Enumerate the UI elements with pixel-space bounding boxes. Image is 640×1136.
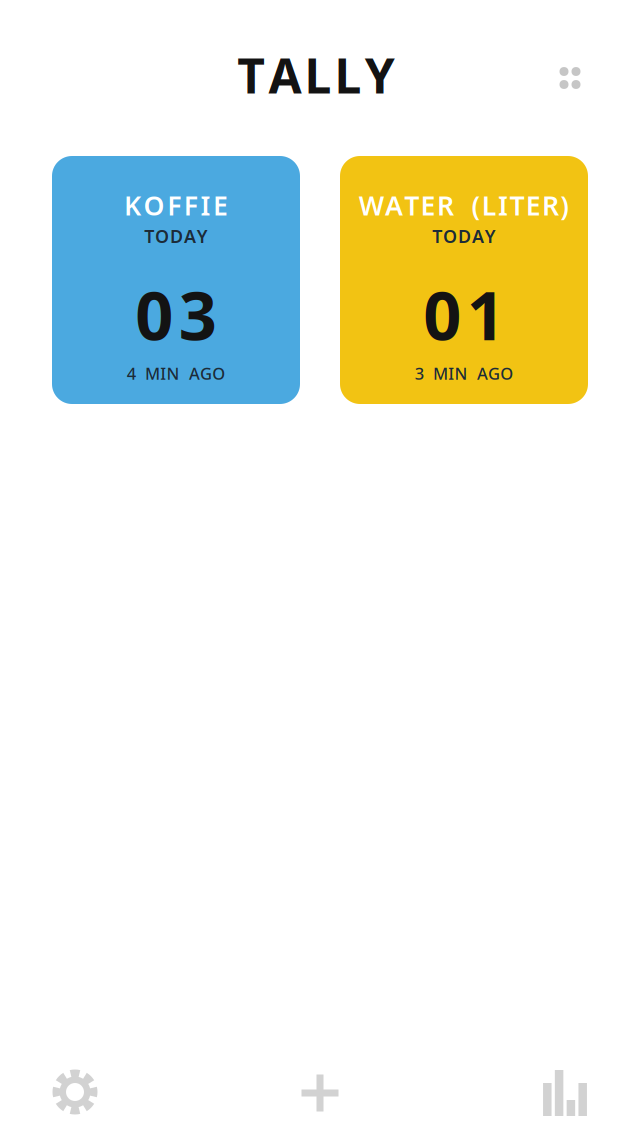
staticText: T — [432, 224, 442, 248]
staticText: O — [443, 224, 457, 248]
staticText: 0 — [423, 269, 461, 360]
staticText: L — [482, 187, 497, 223]
staticText: L — [335, 42, 362, 108]
staticText: A — [385, 187, 403, 223]
staticText: M — [433, 362, 448, 384]
button[interactable]: Statistics — [490, 1045, 640, 1135]
staticText: F — [184, 187, 198, 223]
staticText: A — [184, 224, 196, 248]
staticText: L — [304, 42, 331, 108]
staticText: A — [189, 362, 200, 384]
staticText: E — [421, 187, 436, 223]
button[interactable]: Add counter — [245, 1045, 395, 1135]
staticText: I — [448, 362, 454, 384]
staticText: G — [200, 362, 212, 384]
staticText: E — [526, 187, 541, 223]
staticText: R — [437, 187, 454, 223]
staticText: N — [454, 362, 467, 384]
button[interactable]: Switch layout — [540, 48, 600, 108]
staticText: D — [458, 224, 471, 248]
staticText: A — [268, 42, 301, 108]
staticText: R — [542, 187, 559, 223]
staticText: T — [237, 42, 265, 108]
button[interactable]: W — [340, 156, 588, 404]
staticText: I — [498, 187, 508, 223]
staticText: ) — [560, 187, 569, 223]
staticText: K — [124, 187, 141, 223]
staticText: 3 — [179, 269, 217, 360]
staticText: A — [477, 362, 488, 384]
staticText: T — [144, 224, 154, 248]
staticText: 1 — [467, 269, 505, 360]
staticText: Y — [365, 42, 395, 108]
staticText: Y — [485, 224, 496, 248]
staticText: I — [200, 187, 210, 223]
staticText: M — [145, 362, 160, 384]
staticText: 0 — [135, 269, 173, 360]
button[interactable]: K — [52, 156, 300, 404]
staticText: F — [167, 187, 181, 223]
staticText: D — [170, 224, 183, 248]
staticText: 3 — [415, 362, 424, 384]
staticText: N — [166, 362, 179, 384]
staticText: O — [500, 362, 513, 384]
staticText: O — [212, 362, 225, 384]
staticText: Y — [197, 224, 208, 248]
staticText: ( — [471, 187, 480, 223]
button[interactable]: Settings — [0, 1045, 150, 1135]
staticText: W — [359, 187, 384, 223]
staticText: O — [155, 224, 169, 248]
staticText: I — [160, 362, 166, 384]
staticText: G — [488, 362, 500, 384]
staticText: T — [509, 187, 524, 223]
staticText: A — [472, 224, 484, 248]
staticText: 4 — [127, 362, 136, 384]
staticText: T — [404, 187, 419, 223]
staticText: E — [213, 187, 228, 223]
staticText: O — [144, 187, 165, 223]
